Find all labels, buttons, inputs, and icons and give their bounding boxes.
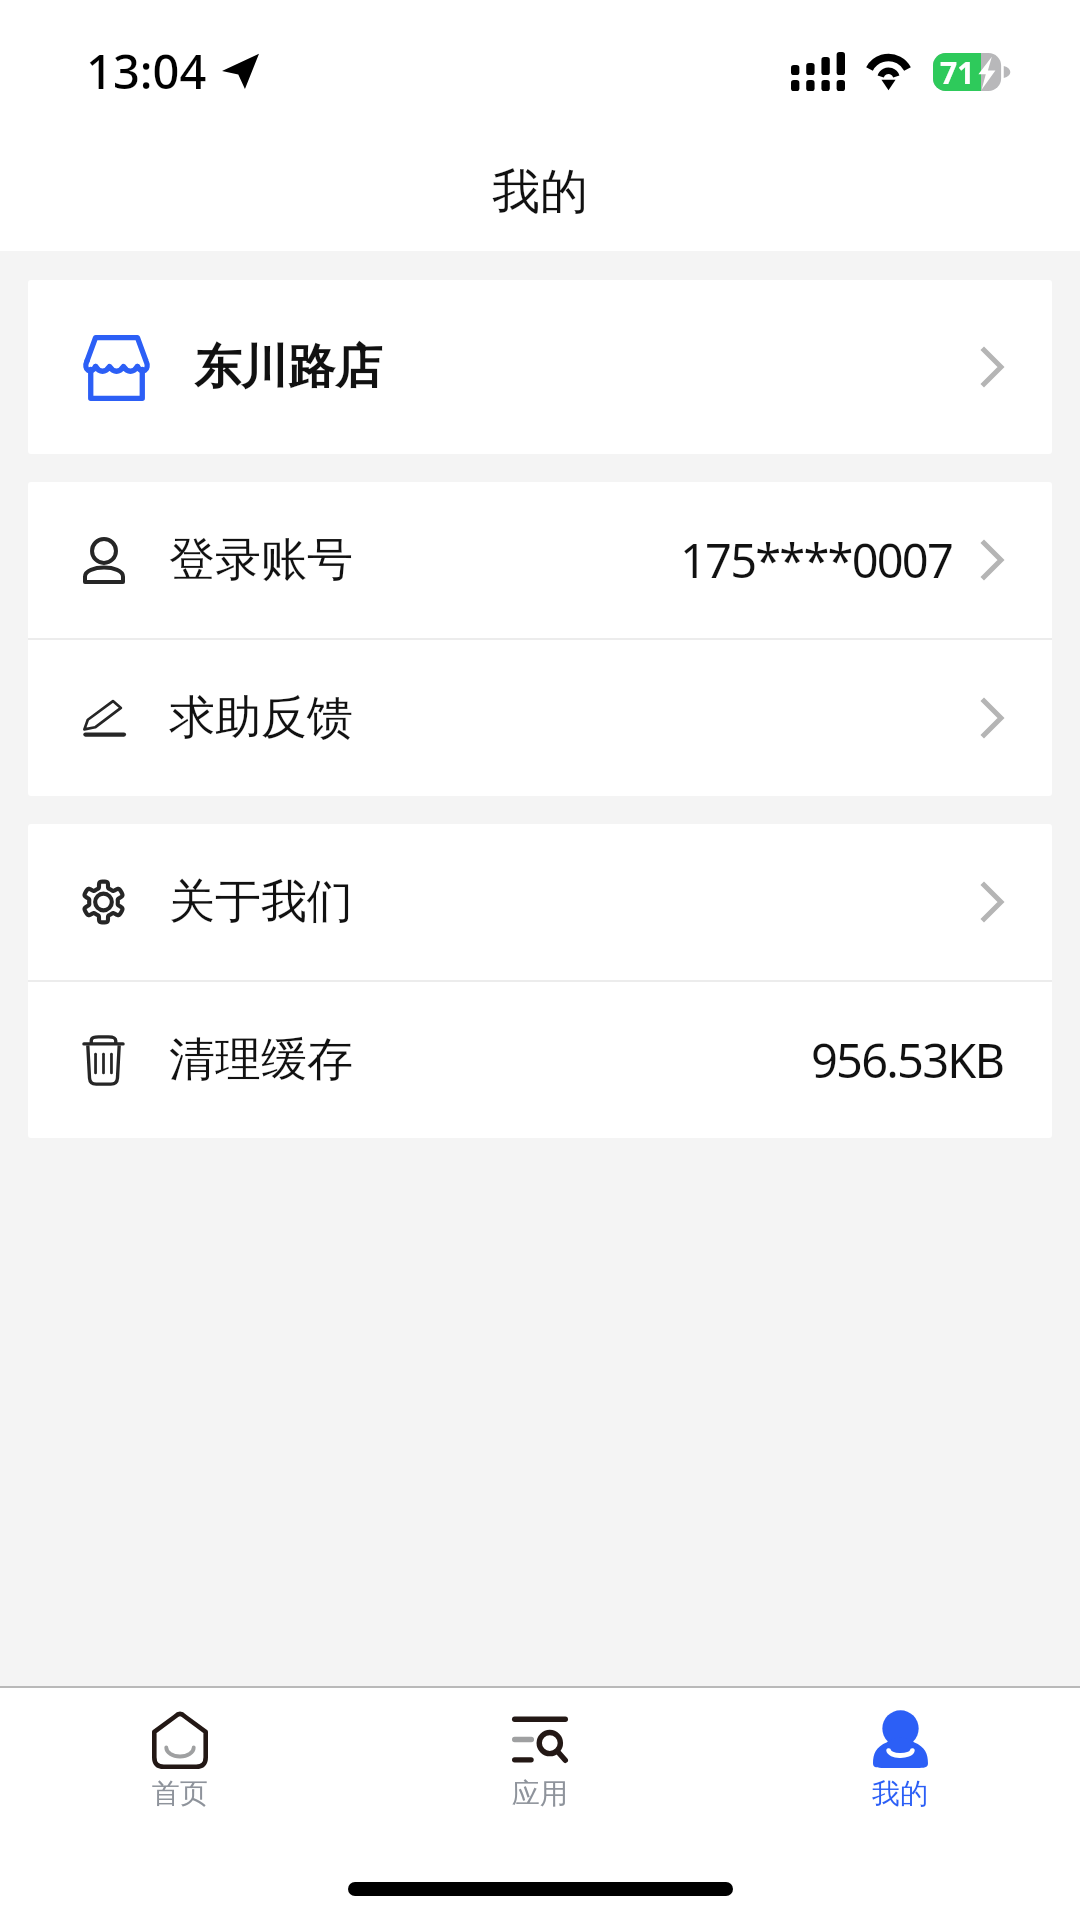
button[interactable]: 登录账号 (28, 482, 1052, 638)
staticText: 13:04 (86, 39, 207, 103)
button[interactable]: 求助反馈 (28, 640, 1052, 796)
staticText: 登录账号 (169, 531, 353, 589)
button[interactable]: Profile (720, 1688, 1080, 1838)
other: Home (152, 1711, 208, 1769)
staticText: 关于我们 (169, 873, 353, 931)
staticText: 我的 (872, 1776, 928, 1811)
staticText: 东川路店 (194, 338, 382, 397)
button[interactable]: Apps (360, 1688, 720, 1838)
staticText: 求助反馈 (169, 689, 353, 747)
button[interactable]: 清理缓存 (28, 982, 1052, 1138)
staticText: 清理缓存 (169, 1031, 353, 1089)
staticText: 175****0007 (680, 528, 952, 592)
button[interactable]: 东川路店 (28, 280, 1052, 454)
button[interactable]: 关于我们 (28, 824, 1052, 980)
other: Apps (512, 1716, 568, 1763)
staticText: 应用 (512, 1776, 568, 1811)
staticText: 71 (940, 52, 975, 90)
staticText: 我的 (492, 162, 588, 222)
staticText: 首页 (152, 1776, 208, 1811)
staticText: 956.53KB (811, 1028, 1004, 1092)
button[interactable]: Home (0, 1688, 360, 1838)
other: Profile (873, 1710, 928, 1768)
